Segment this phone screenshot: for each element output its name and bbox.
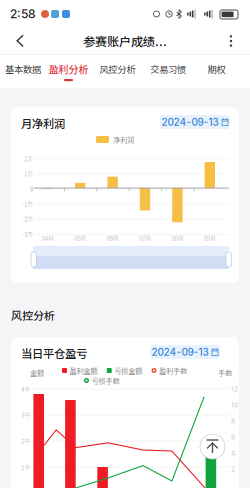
button[interactable]: 基本数据 [1,54,45,88]
button[interactable]: 交易习惯 [144,54,192,88]
staticText: 2 [231,465,235,473]
staticText: 亏损手数 [91,375,119,386]
staticText: 盈利金额 [69,365,97,376]
staticText: -2万 [22,214,33,223]
button[interactable]: 2024-09-13 [160,115,230,129]
staticText: 4千 [21,385,30,393]
staticText: 手数 [218,367,232,378]
button[interactable]: Back to top [200,434,225,459]
staticText: 净利润 [113,134,134,145]
staticText: 当日平仓盈亏 [21,345,87,361]
staticText: 2024-09-13 [151,346,208,358]
staticText: 风控分析 [11,307,55,323]
staticText: 期权 [207,62,225,76]
staticText: 12 [231,385,238,393]
button[interactable]: 盈利分析 [44,54,93,88]
button[interactable]: More options [218,28,244,54]
staticText: 6 [231,433,235,441]
staticText: 0 [30,184,33,193]
button[interactable]: 2024-09-13 [150,345,220,359]
staticText: 08月 [171,234,183,242]
staticText: 09月 [204,234,216,242]
staticText: 风控分析 [99,62,135,76]
staticText: 参赛账户成绩... [83,32,167,50]
staticText: 金额 [30,367,44,378]
staticText: 04月 [42,234,54,242]
staticText: 2千 [21,437,30,445]
staticText: 交易习惯 [150,62,186,76]
button[interactable]: 风控分析 [92,54,143,88]
staticText: 07月 [139,234,151,242]
staticText: 1千 [21,463,30,471]
button[interactable]: Back [6,28,34,54]
staticText: 亏损金额 [114,365,142,376]
staticText: -1万 [22,199,33,208]
staticText: 盈利分析 [48,62,88,76]
staticText: 2万 [24,154,33,163]
staticText: 月净利润 [21,115,65,131]
staticText: 05月 [74,234,86,242]
button[interactable]: 期权 [202,54,231,88]
staticText: 基本数据 [5,62,41,76]
staticText: 06月 [107,234,119,242]
staticText: 1万 [24,169,33,178]
staticText: 2:58 [10,7,36,21]
staticText: 2024-09-13 [161,116,218,128]
staticText: 8 [231,417,235,425]
staticText: -3万 [22,230,33,238]
staticText: 3千 [21,411,30,419]
staticText: 4 [231,449,235,457]
staticText: 盈利手数 [159,365,187,376]
staticText: 10 [231,401,238,409]
